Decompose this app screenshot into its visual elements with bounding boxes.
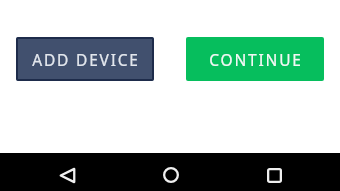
button[interactable]: CONTINUE: [186, 37, 324, 81]
button[interactable]: Back: [51, 159, 83, 191]
button[interactable]: Home: [155, 159, 187, 191]
staticText: CONTINUE: [209, 49, 303, 70]
button[interactable]: Recent apps: [258, 159, 290, 191]
staticText: ADD DEVICE: [32, 49, 140, 70]
button[interactable]: ADD DEVICE: [16, 37, 154, 81]
